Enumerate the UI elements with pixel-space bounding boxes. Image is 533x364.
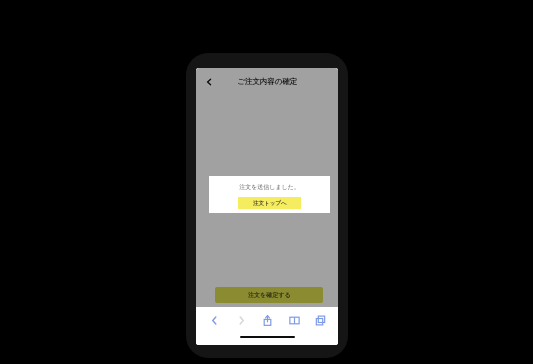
- staticText: 注文を確定する: [248, 291, 291, 299]
- staticText: 注文を送信しました。: [239, 183, 300, 191]
- button[interactable]: Bookmarks: [283, 308, 305, 332]
- button[interactable]: Back: [203, 308, 225, 332]
- button[interactable]: Forward: [230, 308, 252, 332]
- button[interactable]: 注文トップへ: [238, 197, 301, 209]
- button[interactable]: Back: [201, 74, 217, 90]
- staticText: 注文トップへ: [253, 200, 287, 207]
- staticText: ご注文内容の確定: [237, 77, 298, 86]
- button[interactable]: 注文を確定する: [215, 287, 323, 303]
- button[interactable]: Tabs: [309, 308, 331, 332]
- button[interactable]: Share: [256, 308, 278, 332]
